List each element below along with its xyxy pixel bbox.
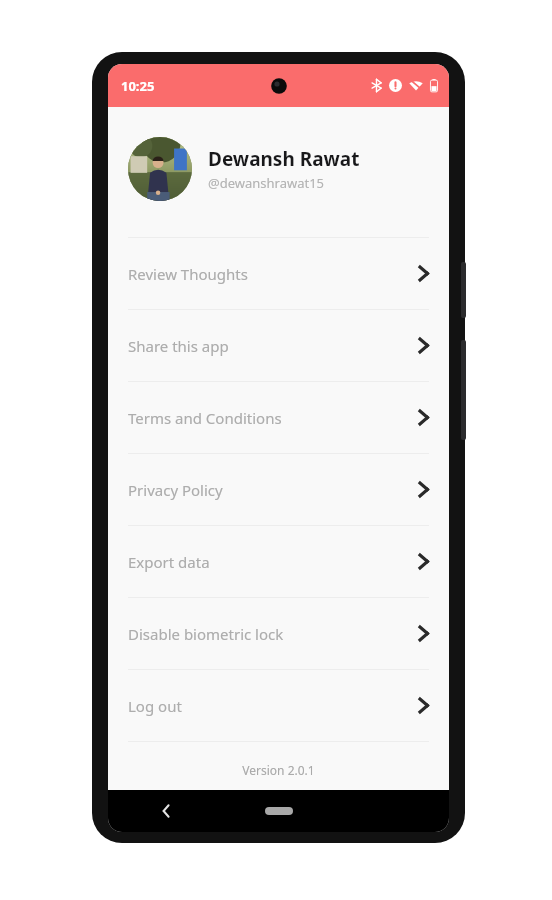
button[interactable]: Dewansh Rawat [128,137,429,201]
other: Open Export data [418,553,429,570]
staticText: Disable biometric lock [128,624,418,644]
button[interactable]: Export data [108,526,449,597]
other: Open Share this app [418,337,429,354]
other: Open Review Thoughts [418,265,429,282]
button[interactable]: Home [265,807,293,815]
button[interactable]: Disable biometric lock [108,598,449,669]
button[interactable]: Terms and Conditions [108,382,449,453]
staticText: Terms and Conditions [128,408,418,428]
staticText: Dewansh Rawat [208,146,360,172]
other: Open Log out [418,697,429,714]
button[interactable]: Share this app [108,310,449,381]
staticText: Export data [128,552,418,572]
staticText: Version 2.0.1 [108,762,449,778]
button[interactable]: Review Thoughts [108,238,449,309]
staticText: @dewanshrawat15 [208,174,325,192]
staticText: Share this app [128,336,418,356]
other: Open Disable biometric lock [418,625,429,642]
staticText: Log out [128,696,418,716]
other: Open Terms and Conditions [418,409,429,426]
staticText: Privacy Policy [128,480,418,500]
other: Open Privacy Policy [418,481,429,498]
staticText: 10:25 [121,77,155,95]
button[interactable]: Log out [108,670,449,741]
staticText: Review Thoughts [128,264,418,284]
button[interactable]: Back [161,803,171,819]
button[interactable]: Privacy Policy [108,454,449,525]
